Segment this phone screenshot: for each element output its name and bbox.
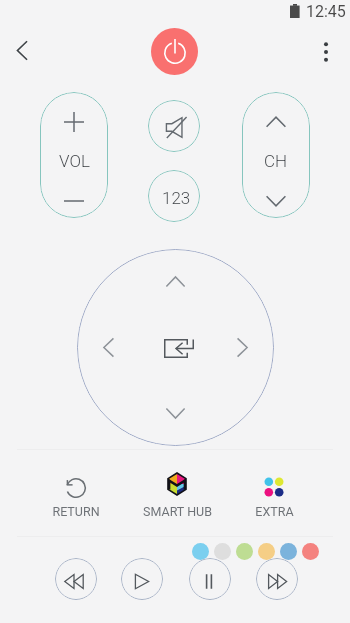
staticText: CH	[264, 151, 288, 171]
button[interactable]: Color button 5	[280, 543, 297, 560]
button[interactable]: Pause	[189, 558, 231, 600]
staticText: EXTRA	[255, 504, 294, 519]
button[interactable]: Rewind	[55, 558, 97, 600]
button[interactable]: CH	[242, 92, 310, 218]
button[interactable]: Color button 3	[236, 543, 253, 560]
staticText: 12:45	[306, 2, 346, 21]
button[interactable]: Mute	[148, 100, 200, 152]
staticText: RETURN	[52, 504, 100, 519]
button[interactable]: Power	[151, 28, 198, 75]
button[interactable]: Color button 4	[258, 543, 275, 560]
button[interactable]: Color button 1	[192, 543, 209, 560]
button[interactable]: Back	[2, 30, 42, 70]
button[interactable]: SMART HUB	[127, 466, 227, 522]
staticText: 123	[162, 188, 191, 208]
button[interactable]: Number pad	[148, 170, 200, 222]
button[interactable]: Play	[121, 558, 163, 600]
button[interactable]: Fast forward	[256, 558, 298, 600]
button[interactable]: RETURN	[26, 466, 126, 522]
staticText: VOL	[59, 151, 90, 171]
button[interactable]: Color button 2	[214, 543, 231, 560]
button[interactable]: VOL	[40, 92, 108, 218]
button[interactable]: Color button 6	[302, 543, 319, 560]
button[interactable]: EXTRA	[224, 466, 324, 522]
button[interactable]: Directional pad	[77, 249, 274, 446]
button[interactable]: More options	[306, 32, 346, 72]
staticText: SMART HUB	[143, 504, 212, 519]
